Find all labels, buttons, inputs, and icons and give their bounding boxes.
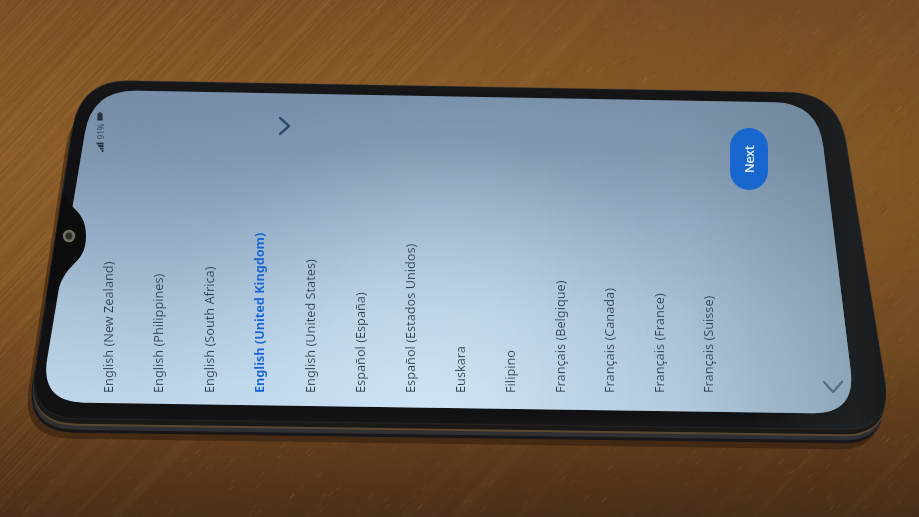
button[interactable]: Choose your language: [0, 0, 919, 517]
